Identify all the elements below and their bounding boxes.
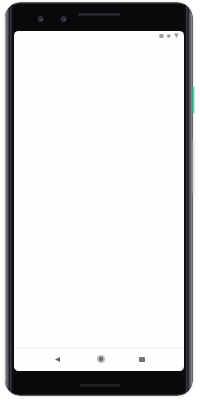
button[interactable]: Home [91, 347, 111, 371]
button[interactable]: Recent apps [132, 347, 152, 371]
button[interactable]: Back [47, 347, 67, 371]
